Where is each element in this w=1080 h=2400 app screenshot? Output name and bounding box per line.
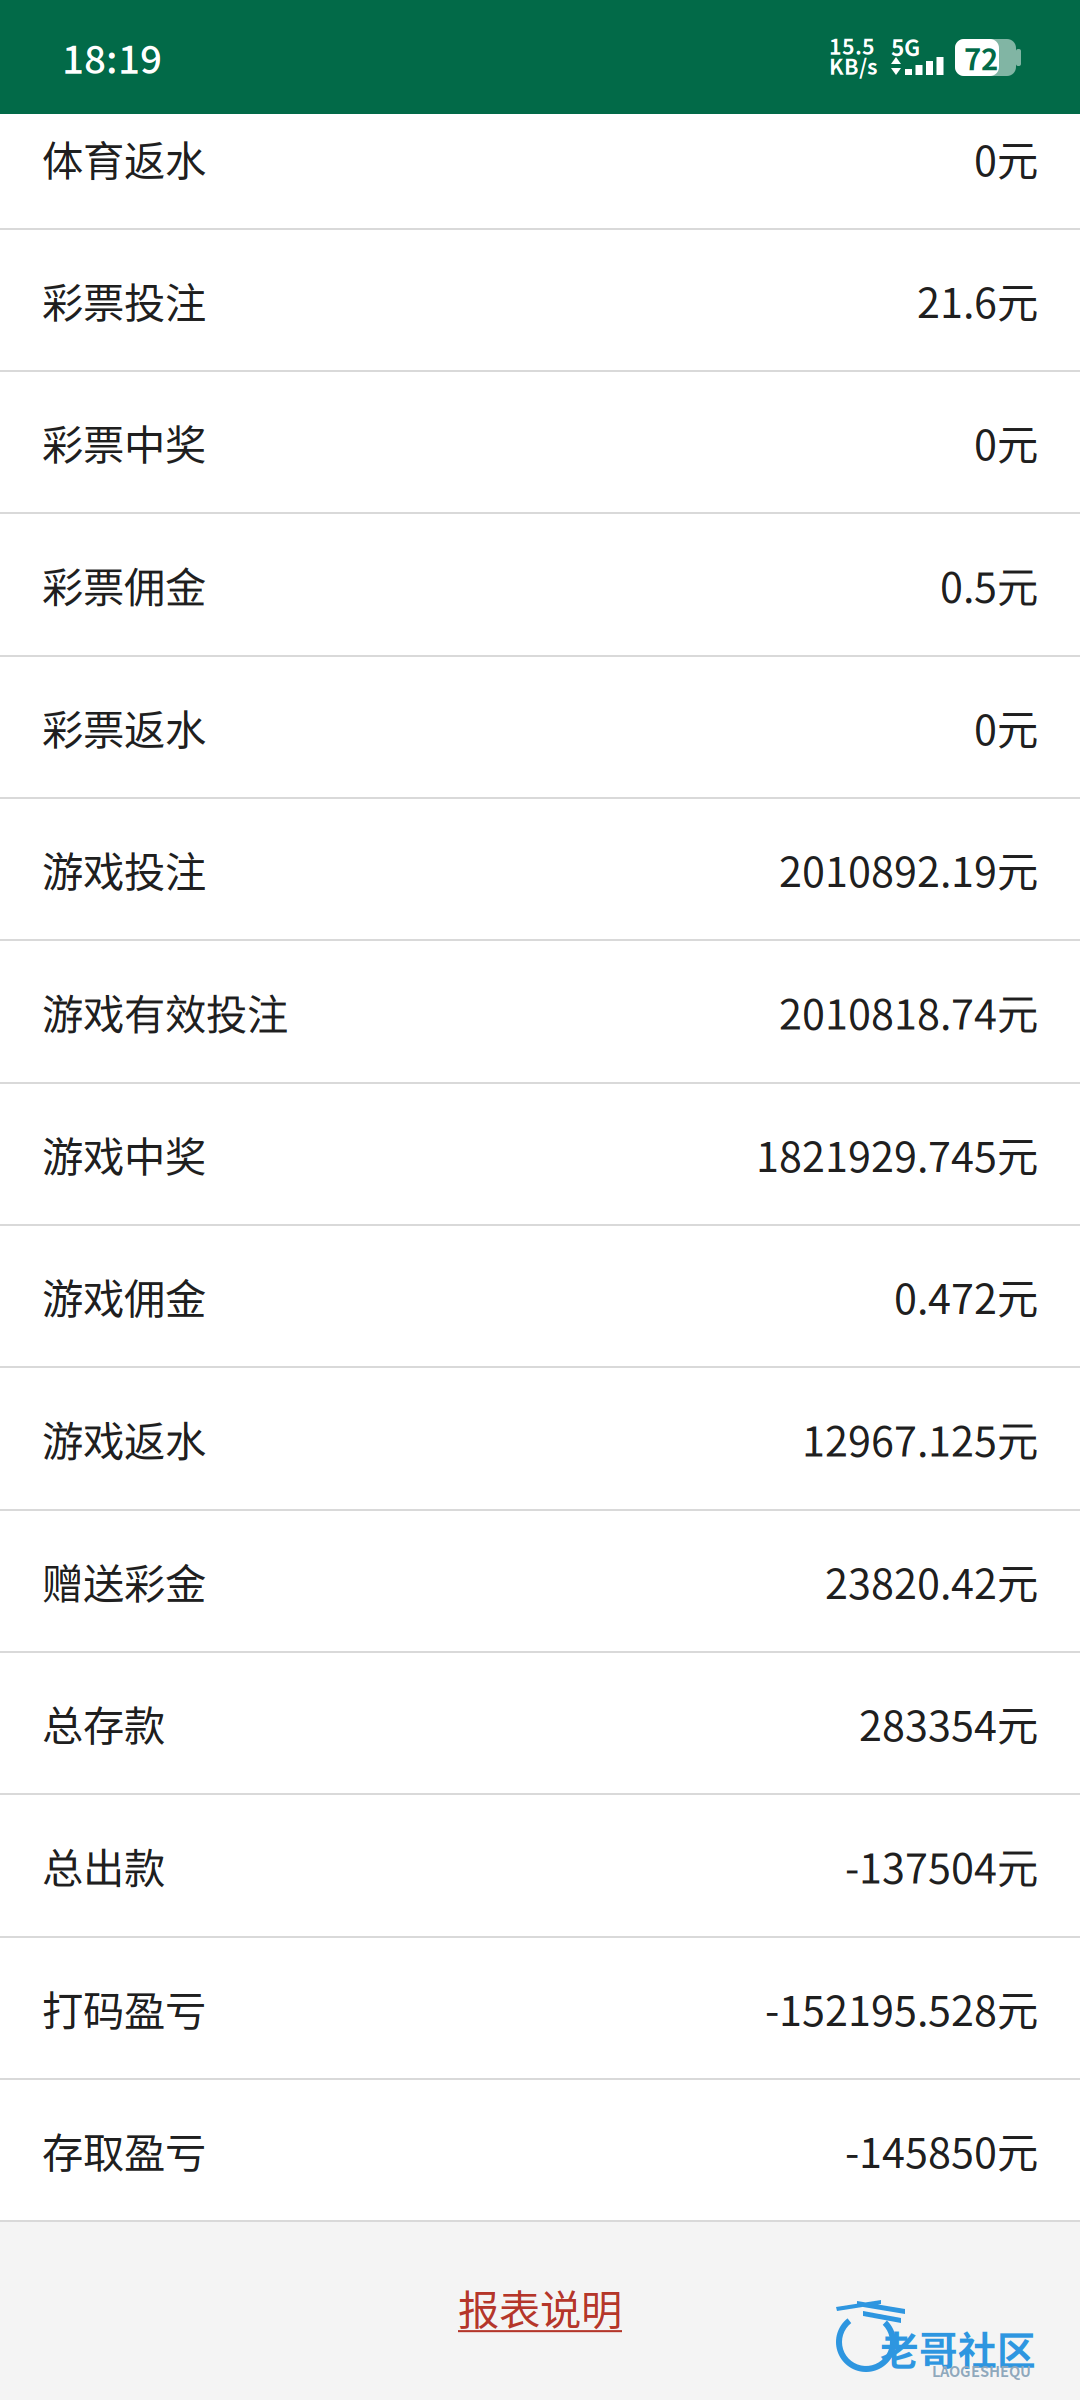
staticText: 彩票返水 (42, 697, 206, 757)
staticText: 彩票投注 (42, 270, 206, 330)
button[interactable]: 游戏中奖 (0, 1084, 1080, 1226)
staticText: 总存款 (42, 1693, 165, 1753)
button[interactable]: 体育返水 (0, 114, 1080, 230)
staticText: 2010818.74元 (779, 982, 1038, 1041)
staticText: 彩票中奖 (42, 412, 206, 472)
button[interactable]: 游戏佣金 (0, 1226, 1080, 1368)
staticText: KB/s (829, 50, 878, 81)
staticText: 21.6元 (917, 270, 1038, 330)
staticText: 0.472元 (894, 1266, 1038, 1326)
staticText: 报表说明 (458, 2277, 622, 2337)
staticText: 体育返水 (42, 128, 206, 188)
button[interactable]: 报表说明 (446, 2267, 634, 2347)
button[interactable]: 赠送彩金 (0, 1511, 1080, 1653)
button[interactable]: 存取盈亏 (0, 2080, 1080, 2222)
button[interactable]: 游戏返水 (0, 1368, 1080, 1511)
staticText: 游戏返水 (42, 1409, 206, 1468)
staticText: 18:19 (62, 29, 162, 85)
button[interactable]: 彩票返水 (0, 657, 1080, 799)
staticText: 23820.42元 (825, 1551, 1038, 1611)
button[interactable]: 彩票投注 (0, 230, 1080, 372)
button[interactable]: 打码盈亏 (0, 1938, 1080, 2080)
staticText: 游戏佣金 (42, 1266, 206, 1326)
staticText: 打码盈亏 (42, 1978, 206, 2038)
staticText: 老哥社区 (880, 2320, 1036, 2376)
staticText: 彩票佣金 (42, 555, 206, 614)
staticText: 赠送彩金 (42, 1551, 206, 1611)
button[interactable]: 总存款 (0, 1653, 1080, 1795)
button[interactable]: 游戏有效投注 (0, 941, 1080, 1084)
staticText: 0元 (974, 128, 1038, 188)
staticText: LAOGESHEQU (932, 2360, 1031, 2381)
staticText: 5G (891, 30, 920, 63)
staticText: 存取盈亏 (42, 2120, 206, 2180)
staticText: -137504元 (845, 1836, 1038, 1895)
staticText: 0元 (974, 697, 1038, 757)
staticText: 12967.125元 (802, 1409, 1038, 1468)
staticText: 2010892.19元 (779, 839, 1038, 899)
staticText: 游戏投注 (42, 839, 206, 899)
staticText: 总出款 (42, 1836, 165, 1895)
staticText: 15.5 (829, 30, 875, 61)
button[interactable]: 彩票佣金 (0, 514, 1080, 657)
button[interactable]: 游戏投注 (0, 799, 1080, 941)
staticText: 1821929.745元 (756, 1124, 1038, 1184)
button[interactable]: 总出款 (0, 1795, 1080, 1938)
staticText: 283354元 (859, 1693, 1038, 1753)
button[interactable]: 彩票中奖 (0, 372, 1080, 514)
staticText: 0元 (974, 412, 1038, 472)
staticText: -152195.528元 (765, 1978, 1038, 2038)
staticText: 0.5元 (940, 555, 1038, 614)
staticText: 游戏有效投注 (42, 982, 288, 1041)
staticText: 72 (964, 36, 998, 79)
staticText: -145850元 (845, 2120, 1038, 2180)
staticText: 游戏中奖 (42, 1124, 206, 1184)
